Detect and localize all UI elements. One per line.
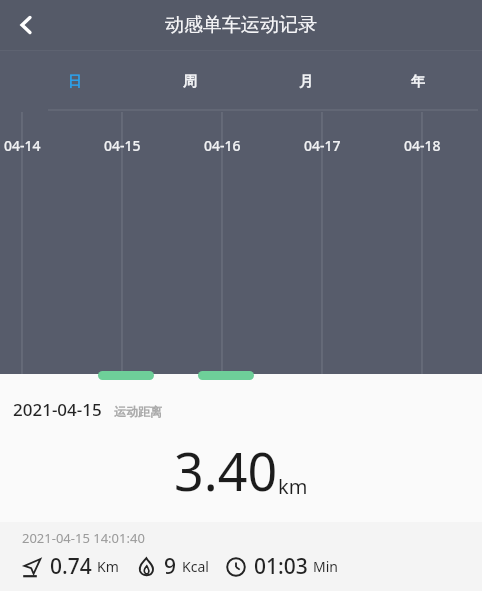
staticText: 日 bbox=[68, 73, 82, 91]
staticText: 01:03 bbox=[254, 552, 308, 581]
staticText: 3.40 bbox=[174, 435, 278, 506]
staticText: Km bbox=[97, 557, 119, 576]
button[interactable]: 年 bbox=[380, 62, 456, 102]
staticText: km bbox=[278, 473, 308, 500]
button[interactable]: Back bbox=[4, 3, 48, 47]
button[interactable]: 周 bbox=[152, 62, 228, 102]
staticText: Min bbox=[313, 557, 338, 576]
staticText: Kcal bbox=[182, 557, 209, 576]
button[interactable]: 月 bbox=[268, 62, 344, 102]
staticText: 04-18 bbox=[404, 136, 441, 155]
staticText: 04-17 bbox=[304, 136, 341, 155]
staticText: 04-16 bbox=[204, 136, 241, 155]
staticText: 04-14 bbox=[4, 136, 41, 155]
button[interactable]: 日 bbox=[37, 62, 113, 102]
staticText: 周 bbox=[183, 73, 197, 91]
staticText: 动感单车运动记录 bbox=[0, 13, 482, 37]
button[interactable]: 2021-04-15 14:01:40 bbox=[0, 522, 482, 591]
staticText: 9 bbox=[164, 552, 177, 581]
staticText: 运动距离 bbox=[114, 404, 162, 419]
staticText: 04-15 bbox=[104, 136, 141, 155]
staticText: 月 bbox=[299, 73, 313, 91]
staticText: 0.74 bbox=[50, 552, 92, 581]
staticText: 年 bbox=[411, 73, 425, 91]
staticText: 2021-04-15 14:01:40 bbox=[22, 529, 145, 547]
staticText: 2021-04-15 bbox=[13, 398, 102, 421]
